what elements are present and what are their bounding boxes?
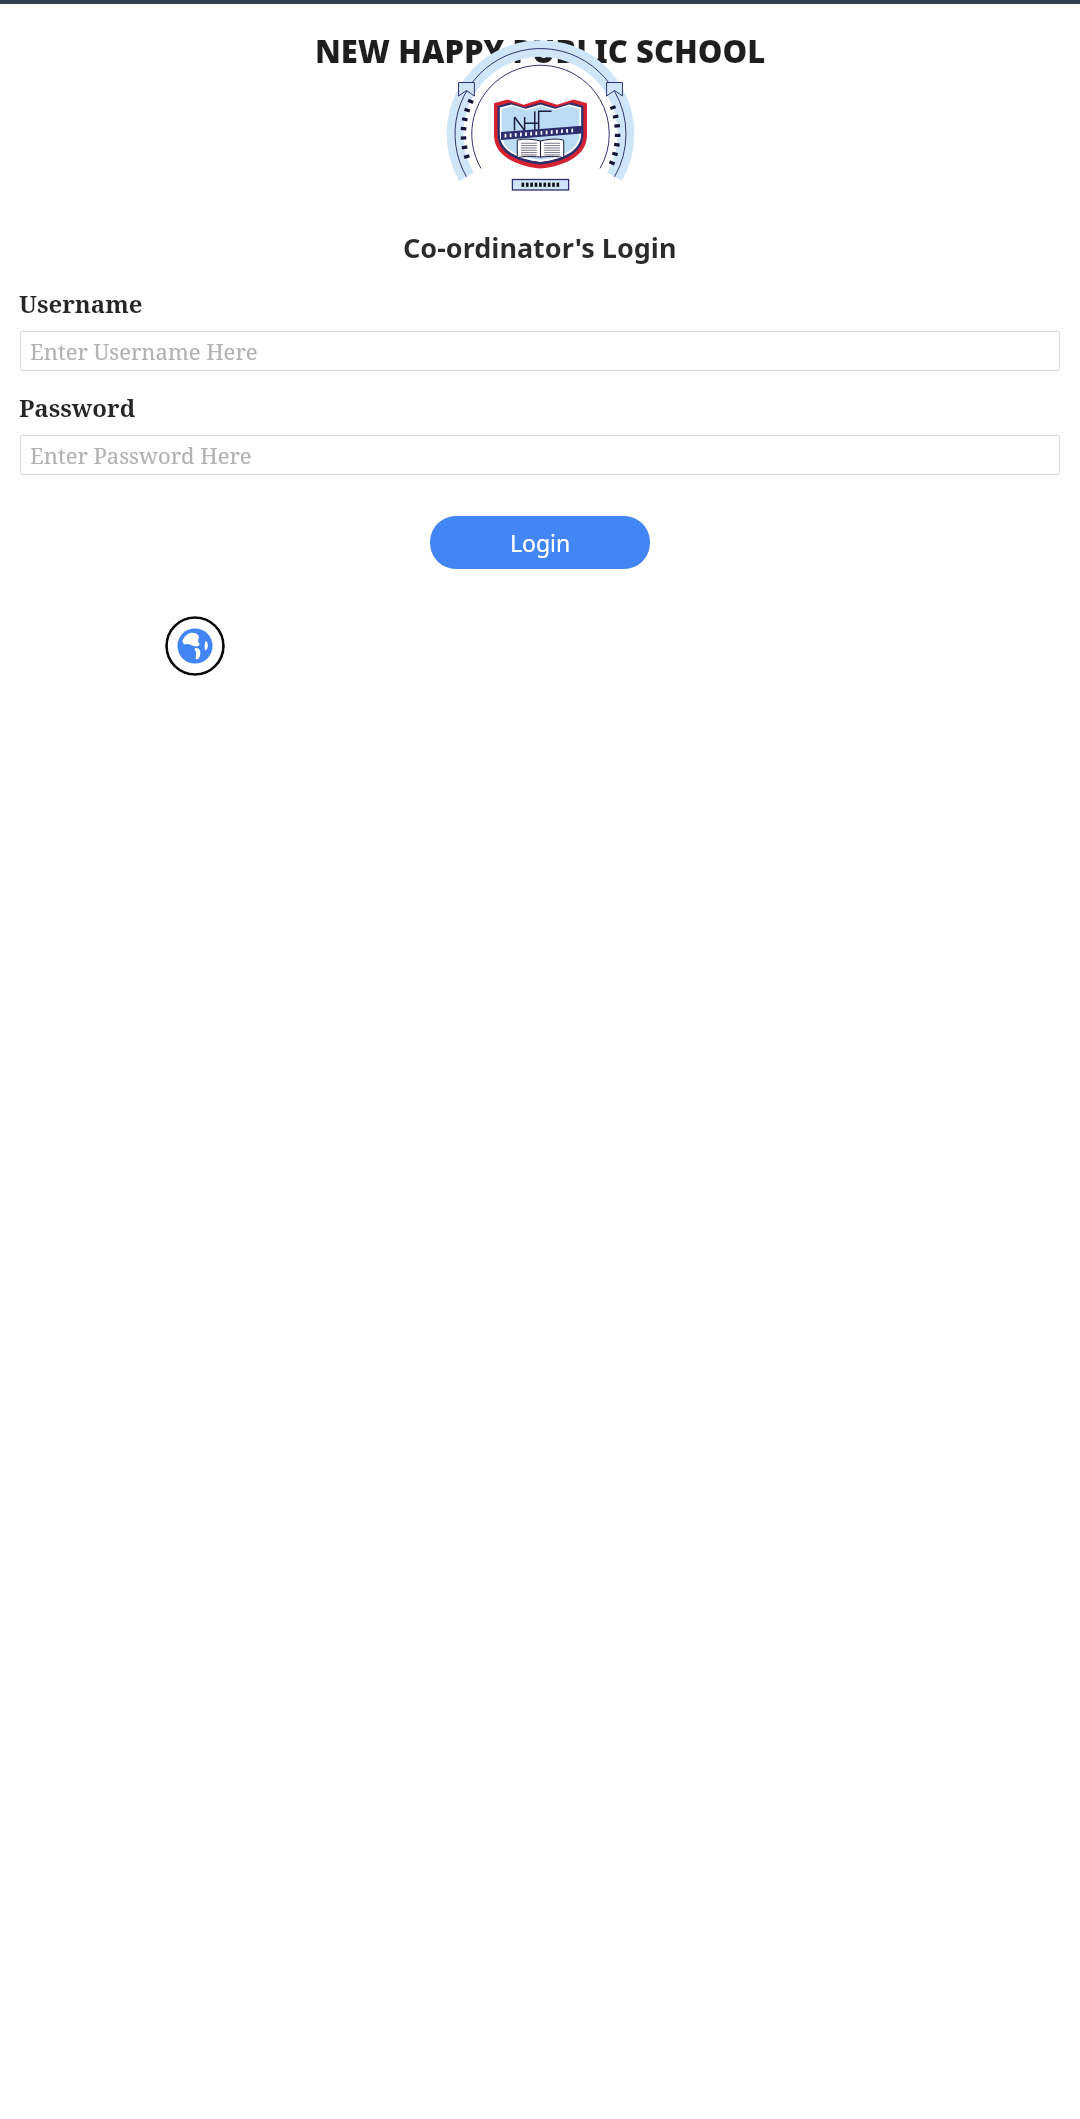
staticText: NEW HAPPY PUBLIC SCHOOL (315, 30, 766, 72)
button[interactable]: Enter Password Here (20, 435, 1060, 475)
staticText: Enter Username Here (30, 336, 258, 366)
staticText: Enter Password Here (30, 440, 252, 470)
staticText: Username (19, 287, 143, 320)
button[interactable]: Enter Username Here (20, 331, 1060, 371)
staticText: Password (19, 391, 136, 424)
button[interactable]: Login (430, 516, 650, 569)
button[interactable]: Visit website (165, 616, 225, 676)
staticText: Login (510, 527, 571, 558)
staticText: Co-ordinator's Login (403, 229, 677, 266)
